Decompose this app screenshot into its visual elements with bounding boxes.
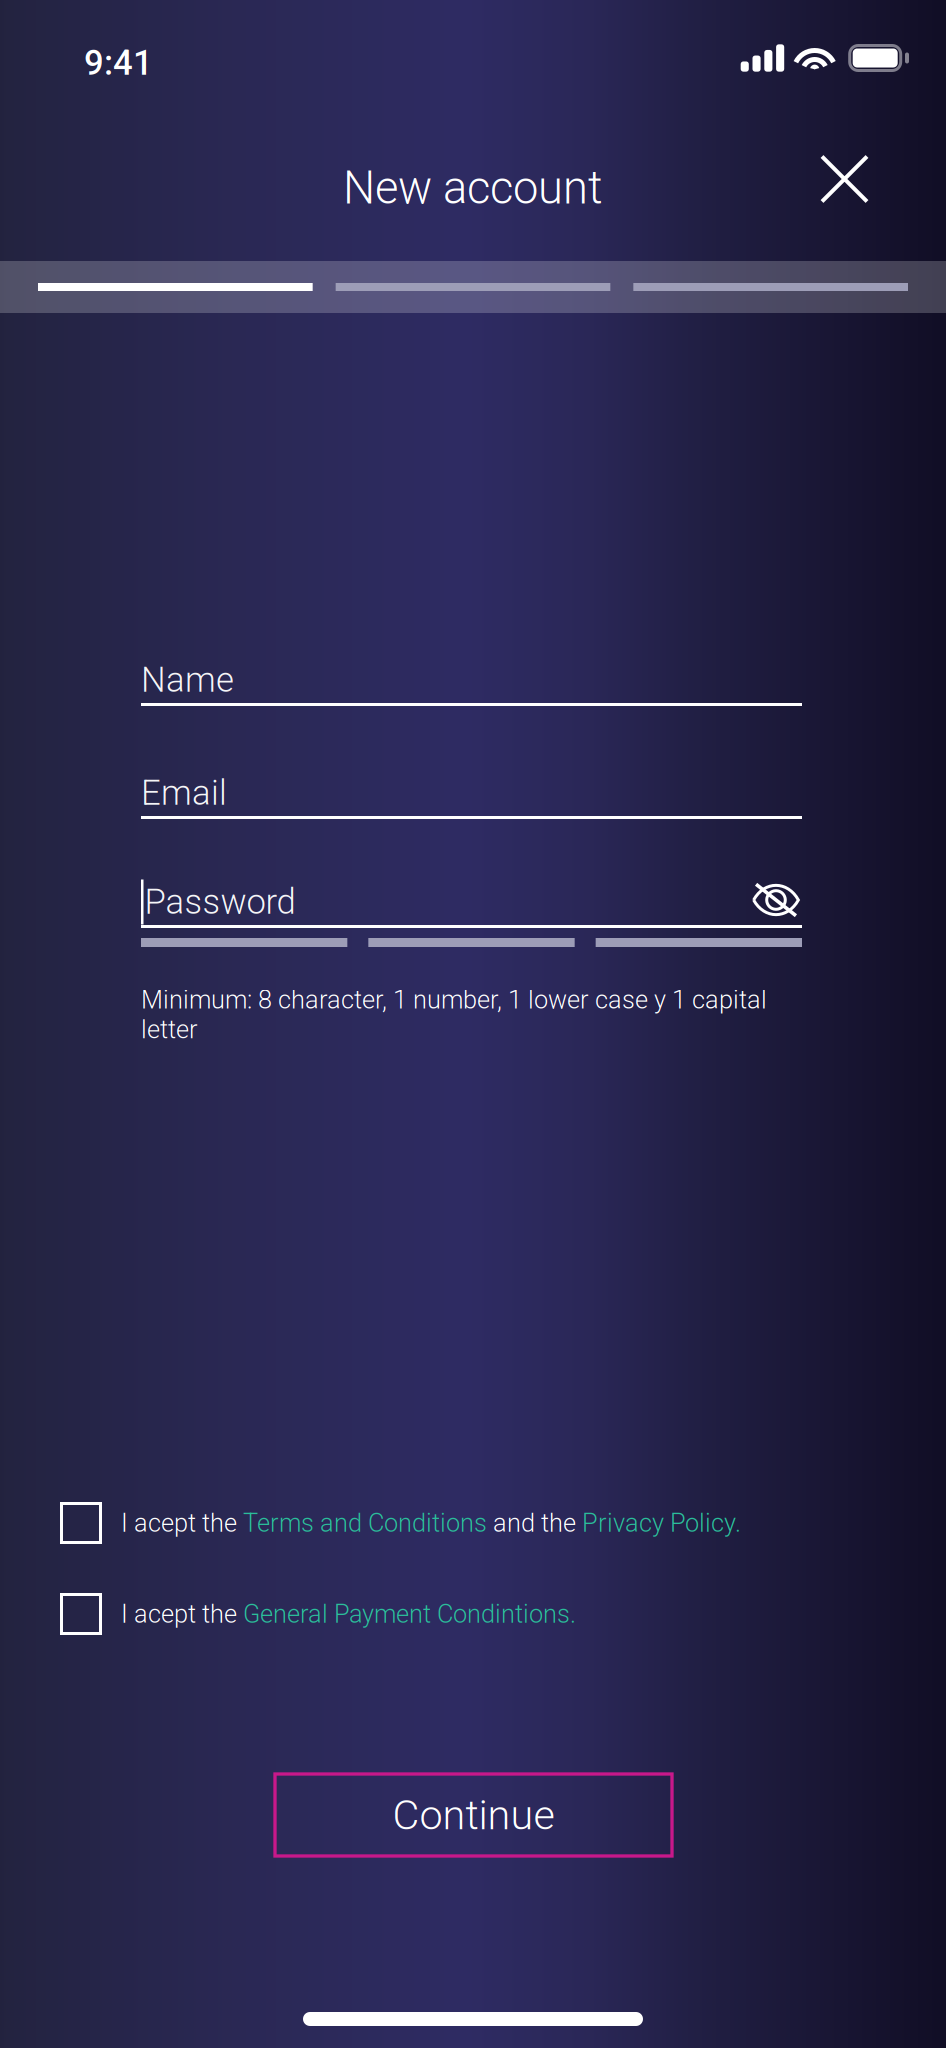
staticText: Continue bbox=[392, 1791, 554, 1839]
staticText: Email bbox=[141, 773, 227, 813]
staticText: Minimum: 8 character, 1 number, 1 lower … bbox=[141, 985, 767, 1044]
staticText: Terms and Conditions bbox=[243, 1508, 487, 1538]
staticText: New account bbox=[343, 161, 603, 215]
button[interactable]: I acept the bbox=[60, 1583, 926, 1645]
staticText: I acept the bbox=[121, 1508, 243, 1538]
button[interactable]: I acept the bbox=[60, 1492, 926, 1554]
staticText: General Payment Condintions. bbox=[243, 1599, 576, 1629]
button[interactable]: Continue bbox=[275, 1774, 672, 1856]
staticText: I acept the bbox=[121, 1599, 243, 1629]
staticText: Name bbox=[141, 660, 234, 700]
button[interactable]: Show password bbox=[732, 884, 802, 919]
button[interactable]: Close bbox=[822, 158, 946, 217]
staticText: and the bbox=[487, 1508, 582, 1538]
staticText: 9:41 bbox=[84, 43, 153, 83]
staticText: Password bbox=[144, 882, 295, 922]
staticText: Privacy Policy. bbox=[582, 1508, 741, 1538]
